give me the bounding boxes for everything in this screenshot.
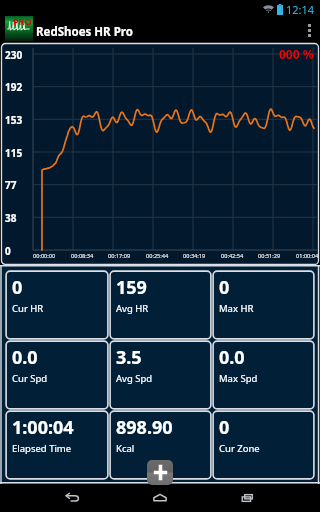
button[interactable]: More options bbox=[298, 18, 320, 43]
button[interactable]: 0 bbox=[5, 270, 109, 340]
button[interactable]: 0 bbox=[212, 410, 315, 480]
button[interactable]: Back bbox=[28, 484, 116, 512]
staticText: 01:00:04 bbox=[296, 252, 319, 260]
staticText: Cur HR bbox=[12, 302, 44, 315]
staticText: 00:42:54 bbox=[221, 252, 244, 260]
staticText: 000 % bbox=[279, 46, 314, 62]
staticText: Max Spd bbox=[219, 372, 258, 385]
button[interactable]: 0.0 bbox=[5, 340, 109, 410]
button[interactable]: Recents bbox=[204, 484, 292, 512]
button[interactable]: 898.90 bbox=[109, 410, 212, 480]
button[interactable]: 0.0 bbox=[212, 340, 315, 410]
staticText: 00:51:29 bbox=[258, 252, 281, 260]
button[interactable]: 0 bbox=[212, 270, 315, 340]
button[interactable]: Home bbox=[116, 484, 204, 512]
staticText: Cur Spd bbox=[12, 372, 48, 385]
staticText: 00:17:09 bbox=[108, 252, 131, 260]
staticText: 00:25:44 bbox=[146, 252, 169, 260]
staticText: 1:00:04 bbox=[12, 415, 74, 440]
staticText: 0.0 bbox=[219, 345, 245, 370]
staticText: Avg Spd bbox=[116, 372, 153, 385]
staticText: 0 bbox=[219, 415, 230, 440]
button[interactable]: 159 bbox=[109, 270, 212, 340]
staticText: 0 bbox=[12, 275, 23, 300]
staticText: 0 bbox=[5, 244, 11, 258]
staticText: 00:00:00 bbox=[33, 252, 56, 260]
staticText: PRO bbox=[13, 15, 32, 27]
staticText: Elapsed Time bbox=[12, 442, 72, 455]
staticText: 3.5 bbox=[116, 345, 142, 370]
staticText: Cur Zone bbox=[219, 442, 260, 455]
staticText: 230 bbox=[5, 48, 23, 62]
staticText: 00:08:34 bbox=[71, 252, 94, 260]
button[interactable]: 1:00:04 bbox=[5, 410, 109, 480]
staticText: 192 bbox=[5, 80, 23, 94]
staticText: 153 bbox=[5, 113, 23, 127]
button[interactable]: 3.5 bbox=[109, 340, 212, 410]
staticText: 00:34:19 bbox=[183, 252, 206, 260]
staticText: 12:14 bbox=[286, 2, 315, 17]
staticText: Avg HR bbox=[116, 302, 149, 315]
staticText: Max HR bbox=[219, 302, 254, 315]
staticText: 115 bbox=[5, 146, 23, 160]
button[interactable]: Add bbox=[147, 460, 173, 485]
staticText: 38 bbox=[5, 211, 17, 225]
staticText: 77 bbox=[5, 178, 17, 192]
staticText: 159 bbox=[116, 275, 147, 300]
staticText: RedShoes HR Pro bbox=[36, 24, 133, 40]
staticText: 0 bbox=[219, 275, 230, 300]
staticText: 0.0 bbox=[12, 345, 38, 370]
staticText: Kcal bbox=[116, 442, 135, 455]
staticText: 898.90 bbox=[116, 415, 173, 440]
